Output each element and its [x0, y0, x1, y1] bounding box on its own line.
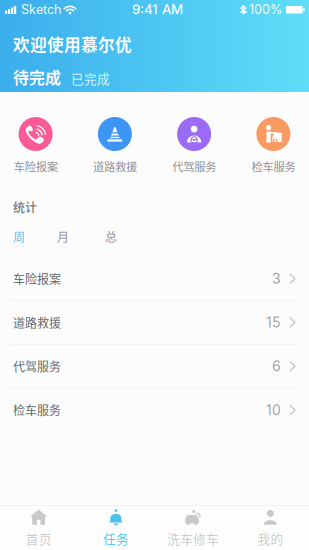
- staticText: 欢迎使用慕尔优: [13, 32, 132, 56]
- staticText: 待完成: [13, 65, 61, 88]
- staticText: 100%: [249, 2, 282, 17]
- staticText: 15: [266, 314, 281, 331]
- button[interactable]: 周: [13, 228, 57, 245]
- button[interactable]: 首页: [0, 506, 77, 550]
- button[interactable]: 我的: [232, 506, 309, 550]
- staticText: 周: [13, 228, 25, 245]
- staticText: 检车服务: [13, 401, 61, 419]
- staticText: 已完成: [71, 69, 110, 87]
- staticText: 我的: [257, 529, 283, 548]
- staticText: 道路救援: [93, 158, 137, 174]
- button[interactable]: 总: [105, 228, 117, 245]
- button[interactable]: 任务: [77, 506, 154, 550]
- button[interactable]: 车险报案: [0, 117, 75, 174]
- button[interactable]: 代驾服务: [154, 117, 234, 174]
- staticText: 检车服务: [251, 158, 295, 174]
- button[interactable]: 检车服务: [234, 117, 309, 174]
- staticText: 总: [105, 228, 117, 245]
- staticText: 月: [57, 228, 69, 245]
- button[interactable]: 待完成: [13, 65, 61, 88]
- button[interactable]: 洗车修车: [154, 506, 232, 550]
- staticText: 车险报案: [13, 270, 61, 287]
- button[interactable]: 已完成: [71, 69, 110, 87]
- staticText: 首页: [26, 529, 52, 548]
- staticText: 统计: [13, 198, 37, 216]
- button[interactable]: 检车服务: [0, 389, 309, 432]
- staticText: 6: [272, 358, 281, 375]
- button[interactable]: 道路救援: [75, 117, 154, 174]
- staticText: Sketch: [21, 2, 61, 17]
- staticText: 代驾服务: [13, 358, 61, 375]
- button[interactable]: 车险报案: [0, 257, 309, 301]
- staticText: 9:41 AM: [132, 1, 183, 17]
- staticText: 10: [266, 402, 281, 418]
- button[interactable]: 代驾服务: [0, 345, 309, 389]
- staticText: 代驾服务: [172, 158, 216, 174]
- staticText: 道路救援: [13, 314, 61, 331]
- staticText: 3: [272, 270, 281, 287]
- button[interactable]: 道路救援: [0, 301, 309, 345]
- staticText: 车险报案: [14, 158, 58, 174]
- staticText: 任务: [103, 529, 129, 548]
- staticText: 洗车修车: [167, 529, 219, 548]
- button[interactable]: 月: [57, 228, 105, 245]
